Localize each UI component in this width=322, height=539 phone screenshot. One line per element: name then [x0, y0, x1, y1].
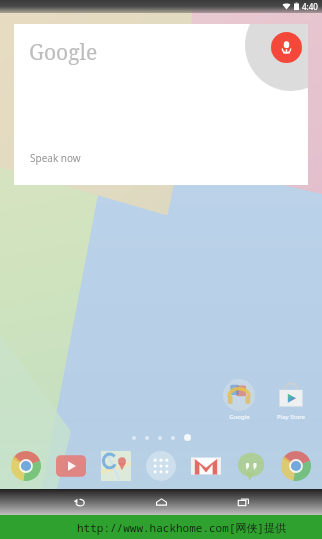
button[interactable]: Google [14, 24, 308, 185]
staticText: Speak now [30, 151, 81, 165]
button[interactable]: YouTube [52, 447, 90, 485]
button[interactable]: Maps [97, 447, 135, 485]
button[interactable]: Google [219, 379, 259, 421]
staticText: 4:40 [302, 1, 318, 12]
staticText: Play Store [277, 413, 305, 421]
button[interactable]: Back [66, 489, 92, 515]
button[interactable]: Chrome [7, 447, 45, 485]
button[interactable]: Hangouts [232, 447, 270, 485]
button[interactable]: Chrome [277, 447, 315, 485]
button[interactable]: Play Store [271, 379, 311, 421]
staticText: http://www.hackhome.com[网侠]提供 [77, 520, 286, 535]
button[interactable]: Apps [142, 447, 180, 485]
button[interactable]: Recents [230, 489, 256, 515]
staticText: Google [29, 38, 98, 67]
button[interactable]: Voice search [271, 32, 302, 63]
button[interactable]: Home [148, 489, 174, 515]
staticText: Google [229, 413, 250, 421]
button[interactable]: Gmail [187, 447, 225, 485]
